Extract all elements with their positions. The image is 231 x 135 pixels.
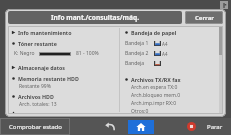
staticText: Bandeja bypass bbox=[125, 60, 152, 67]
staticText: Comprobar estado bbox=[9, 123, 62, 131]
staticText: Almacenaje datos bbox=[18, 64, 65, 71]
staticText: Arch.bloqueo mem.0 bbox=[131, 92, 181, 99]
staticText: A4 bbox=[162, 41, 168, 47]
button[interactable]: Parar bbox=[183, 118, 199, 135]
staticText: K: Negro bbox=[14, 50, 35, 57]
button[interactable]: Ayuda bbox=[220, 1, 228, 9]
staticText: Arch.imp.impr RX:0 bbox=[131, 100, 177, 107]
staticText: Arch. totales: 13 bbox=[19, 101, 57, 108]
button[interactable]: Atrás bbox=[98, 118, 122, 135]
staticText: Trabajos impresión bbox=[18, 111, 69, 114]
button[interactable]: Cerrar bbox=[185, 11, 223, 24]
staticText: Bandeja 2 bbox=[125, 50, 152, 57]
staticText: Arch.en espera TX:0 bbox=[131, 84, 178, 91]
staticText: Info mantenimiento bbox=[18, 29, 72, 36]
staticText: Info mant./consultas/máq. bbox=[51, 13, 139, 22]
staticText: A4 bbox=[162, 51, 168, 57]
button[interactable]: Comprobar estado bbox=[0, 118, 70, 135]
staticText: Tóner restante bbox=[18, 40, 57, 47]
staticText: Archivos TX/RX fax bbox=[131, 76, 181, 83]
staticText: 81 - 100% bbox=[76, 50, 99, 57]
staticText: Otros:0 bbox=[131, 108, 149, 114]
staticText: Cerrar bbox=[195, 14, 214, 22]
staticText: Archivos HDD bbox=[18, 93, 54, 100]
button[interactable]: Parar bbox=[199, 118, 231, 135]
staticText: Bandeja de papel bbox=[131, 29, 177, 36]
staticText: Parar bbox=[207, 123, 223, 131]
button[interactable]: Inicio bbox=[128, 120, 154, 134]
staticText: Bandeja 1 bbox=[125, 40, 152, 47]
staticText: Memoria restante HDD bbox=[18, 75, 79, 82]
staticText: Restante 99% bbox=[19, 83, 51, 90]
